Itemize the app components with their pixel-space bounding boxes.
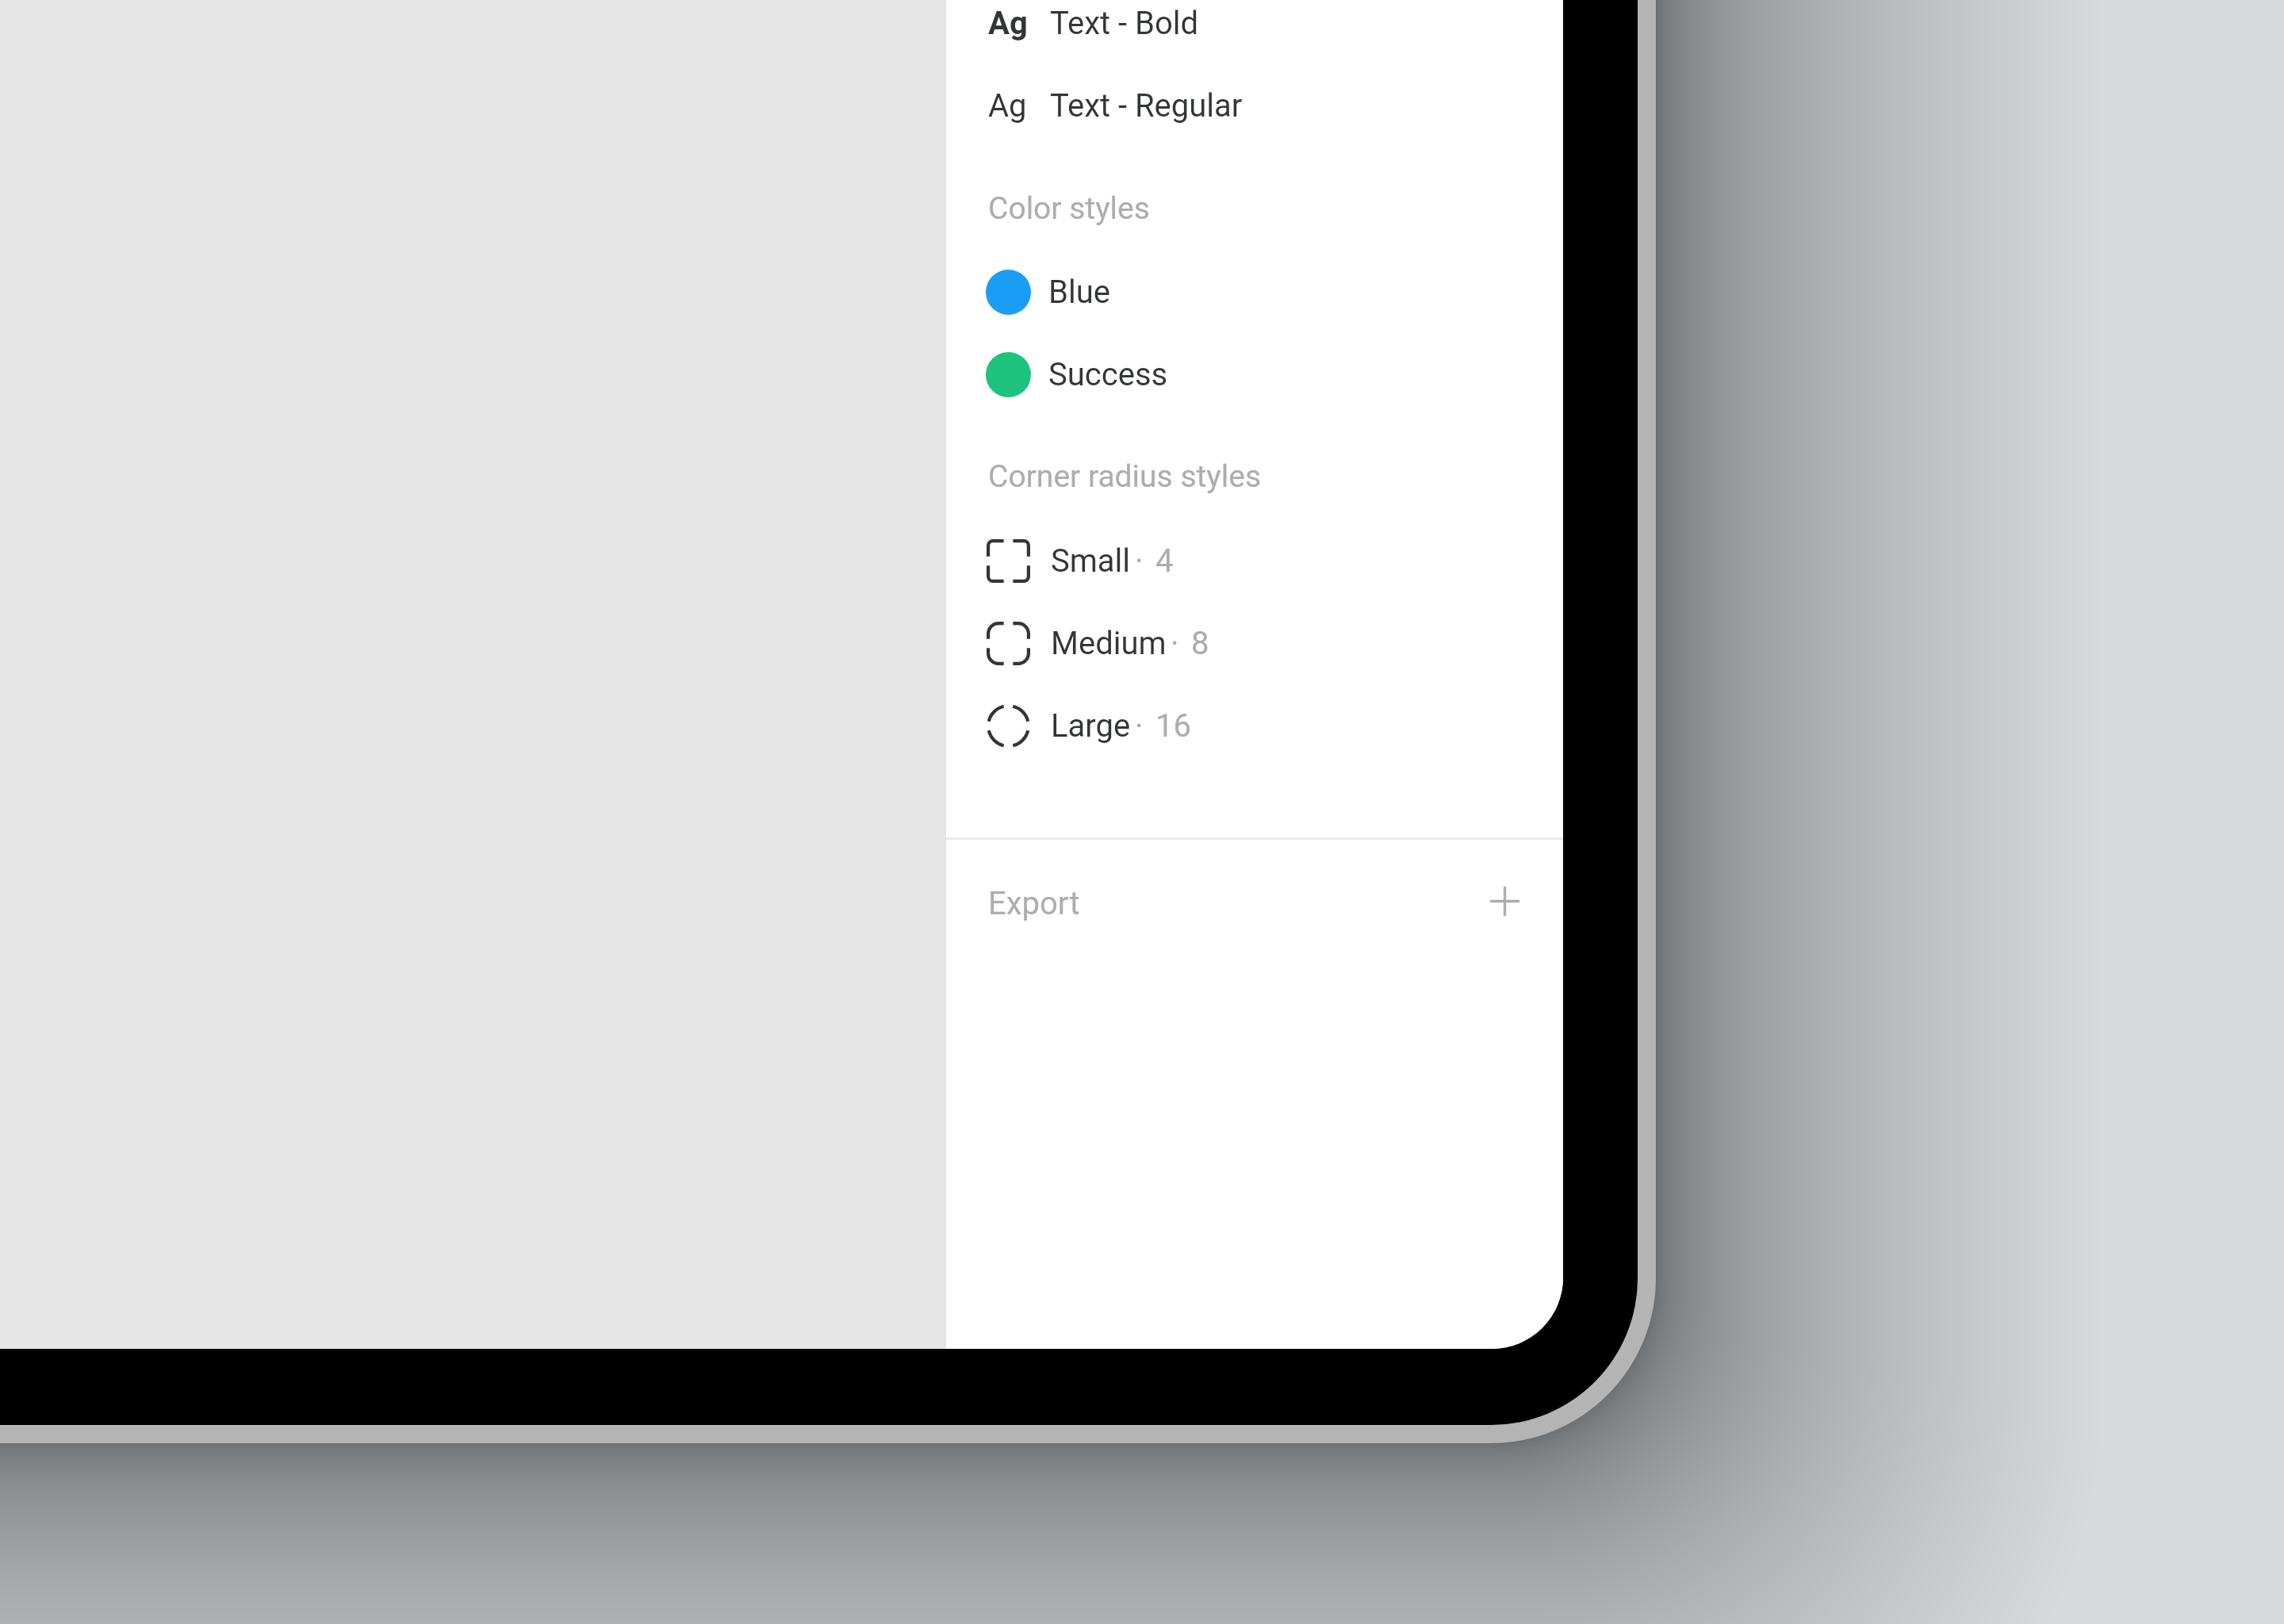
staticText: Success xyxy=(1048,356,1168,393)
staticText: Text - Regular xyxy=(1050,87,1243,124)
button[interactable]: Ag xyxy=(946,66,1563,145)
staticText: Color styles xyxy=(988,190,1150,227)
button[interactable]: Medium xyxy=(946,603,1563,683)
button[interactable]: Small xyxy=(946,521,1563,600)
button[interactable]: Export xyxy=(946,860,1563,947)
staticText: 8 xyxy=(1191,625,1209,662)
staticText: Text - Bold xyxy=(1050,5,1198,42)
staticText: · xyxy=(1135,707,1144,745)
staticText: Ag xyxy=(988,87,1027,124)
button[interactable]: Success xyxy=(946,335,1563,414)
staticText: · xyxy=(1171,625,1179,662)
staticText: Blue xyxy=(1048,274,1110,311)
staticText: Ag xyxy=(988,5,1028,42)
staticText: Export xyxy=(988,885,1080,922)
button[interactable]: Large xyxy=(946,686,1563,765)
staticText: 4 xyxy=(1155,542,1174,580)
staticText: Large xyxy=(1051,707,1131,745)
staticText: Corner radius styles xyxy=(988,458,1262,495)
staticText: · xyxy=(1135,542,1144,580)
button[interactable]: Add export setting xyxy=(1471,870,1538,936)
staticText: 16 xyxy=(1155,707,1191,745)
button[interactable]: Blue xyxy=(946,252,1563,331)
staticText: Medium xyxy=(1051,625,1167,662)
staticText: Small xyxy=(1051,542,1131,580)
button[interactable]: Ag xyxy=(946,0,1563,63)
